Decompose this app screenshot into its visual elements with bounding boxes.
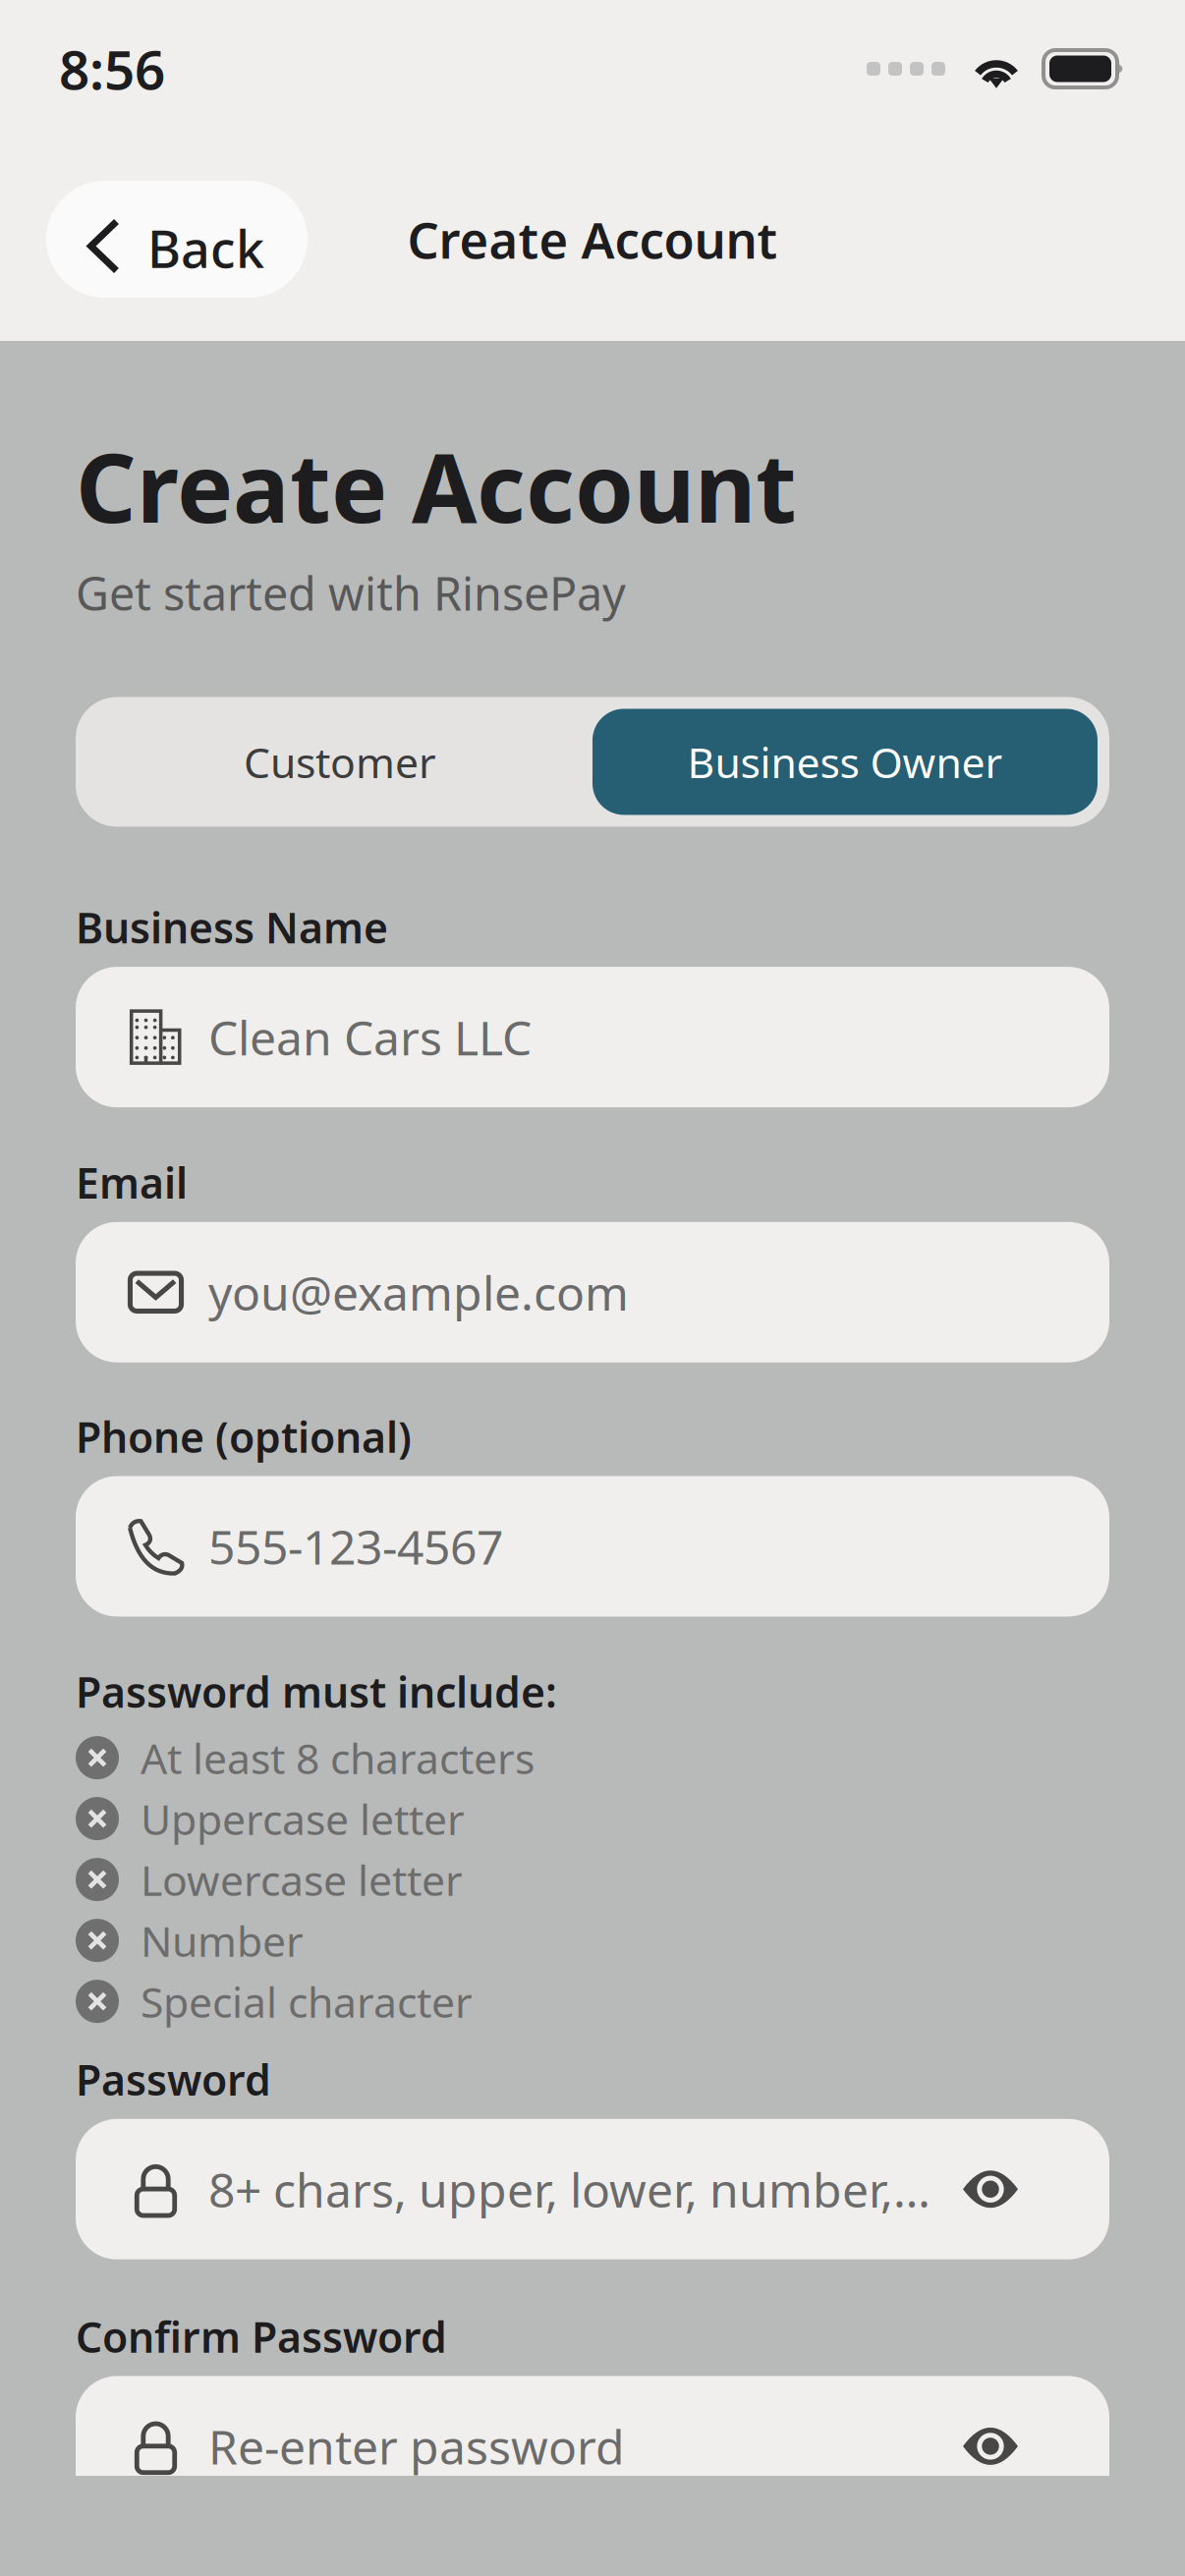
staticText: Back (147, 214, 264, 282)
staticText: 8:56 (59, 33, 165, 104)
staticText: Confirm Password (76, 2309, 447, 2364)
staticText: At least 8 characters (141, 1730, 535, 1786)
staticText: Business Name (76, 899, 388, 955)
staticText: Email (76, 1154, 188, 1210)
staticText: Password must include: (76, 1664, 557, 1719)
staticText: 555-123-4567 (208, 1515, 503, 1578)
staticText: you@example.com (208, 1261, 629, 1323)
button[interactable]: Show password (963, 2171, 1018, 2208)
staticText: Customer (244, 734, 436, 790)
button[interactable]: Customer (87, 709, 592, 815)
staticText: Get started with RinsePay (76, 562, 626, 623)
staticText: Lowercase letter (141, 1852, 463, 1907)
staticText: Special character (141, 1974, 473, 2029)
staticText: Number (141, 1913, 304, 1968)
button[interactable]: Back (46, 181, 308, 298)
staticText: Uppercase letter (141, 1791, 465, 1847)
staticText: Password (76, 2051, 271, 2107)
staticText: Clean Cars LLC (208, 1006, 532, 1068)
staticText: Phone (optional) (76, 1409, 412, 1464)
staticText: Business Owner (687, 734, 1003, 790)
staticText: 8+ chars, upper, lower, number,… (208, 2158, 931, 2220)
staticText: Re-enter password (208, 2415, 625, 2477)
staticText: Create Account (76, 423, 797, 549)
button[interactable]: Show confirm password (963, 2428, 1018, 2465)
staticText: Create Account (407, 206, 778, 272)
button[interactable]: Business Owner (592, 709, 1098, 815)
